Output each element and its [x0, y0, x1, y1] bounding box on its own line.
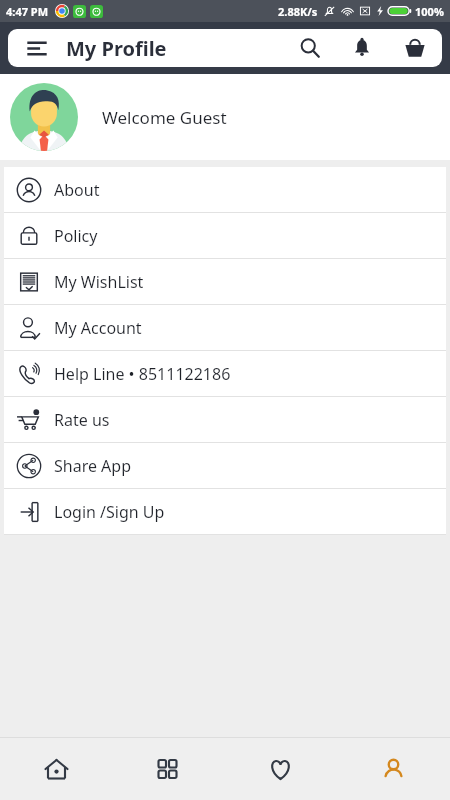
staticText: Rate us: [54, 409, 110, 431]
button[interactable]: Policy: [4, 213, 446, 258]
button[interactable]: Cart: [388, 29, 442, 67]
button[interactable]: Login /Sign Up: [4, 489, 446, 534]
button[interactable]: Wishlist: [224, 738, 337, 800]
staticText: About: [54, 179, 100, 201]
button[interactable]: Menu: [8, 29, 66, 67]
button[interactable]: My Account: [4, 305, 446, 350]
button[interactable]: Help Line • 8511122186: [4, 351, 446, 396]
staticText: Welcome Guest: [102, 106, 227, 129]
staticText: 2.88K/s: [278, 4, 318, 19]
button[interactable]: Search: [284, 29, 336, 67]
staticText: My Profile: [66, 35, 167, 62]
button[interactable]: About: [4, 167, 446, 212]
button[interactable]: Profile: [337, 738, 450, 800]
staticText: Login /Sign Up: [54, 501, 165, 523]
button[interactable]: Share App: [4, 443, 446, 488]
staticText: 100%: [415, 4, 444, 19]
staticText: My Account: [54, 317, 142, 339]
staticText: 4:47 PM: [6, 4, 49, 19]
staticText: Policy: [54, 225, 98, 247]
button[interactable]: Notifications: [336, 29, 388, 67]
staticText: My WishList: [54, 271, 144, 293]
button[interactable]: Welcome Guest: [0, 74, 450, 160]
staticText: Help Line • 8511122186: [54, 363, 231, 385]
button[interactable]: Rate us: [4, 397, 446, 442]
button[interactable]: Home: [0, 738, 112, 800]
button[interactable]: My WishList: [4, 259, 446, 304]
staticText: Share App: [54, 455, 132, 477]
button[interactable]: Categories: [112, 738, 224, 800]
